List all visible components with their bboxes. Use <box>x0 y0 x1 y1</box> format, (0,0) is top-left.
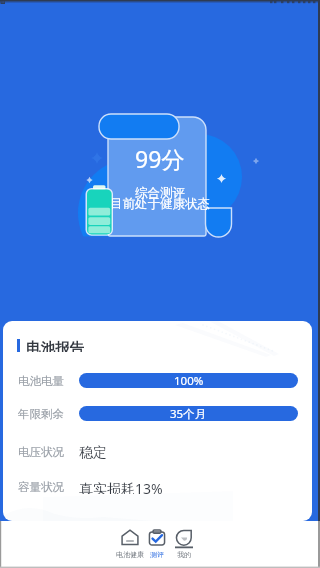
staticText: 电压状况 <box>18 445 64 459</box>
button[interactable]: Profile <box>166 521 202 568</box>
staticText: 99分 <box>135 143 185 174</box>
staticText: 我的 <box>177 550 191 559</box>
staticText: 容量状况 <box>18 480 64 494</box>
staticText: 综合测评 <box>135 185 185 201</box>
button[interactable]: Battery health <box>112 521 148 568</box>
staticText: 电池报告 <box>26 339 84 352</box>
staticText: 稳定 <box>79 444 107 459</box>
staticText: 电池健康 <box>116 550 144 559</box>
staticText: 测评 <box>150 550 164 559</box>
button[interactable]: Evaluation <box>139 521 175 568</box>
staticText: 真实损耗13% <box>79 479 163 494</box>
staticText: 年限剩余 <box>18 407 64 421</box>
staticText: 100% <box>174 373 204 388</box>
staticText: 目前处于健康状态 <box>110 196 210 212</box>
staticText: 35个月 <box>170 406 207 421</box>
staticText: 电池电量 <box>18 374 64 388</box>
